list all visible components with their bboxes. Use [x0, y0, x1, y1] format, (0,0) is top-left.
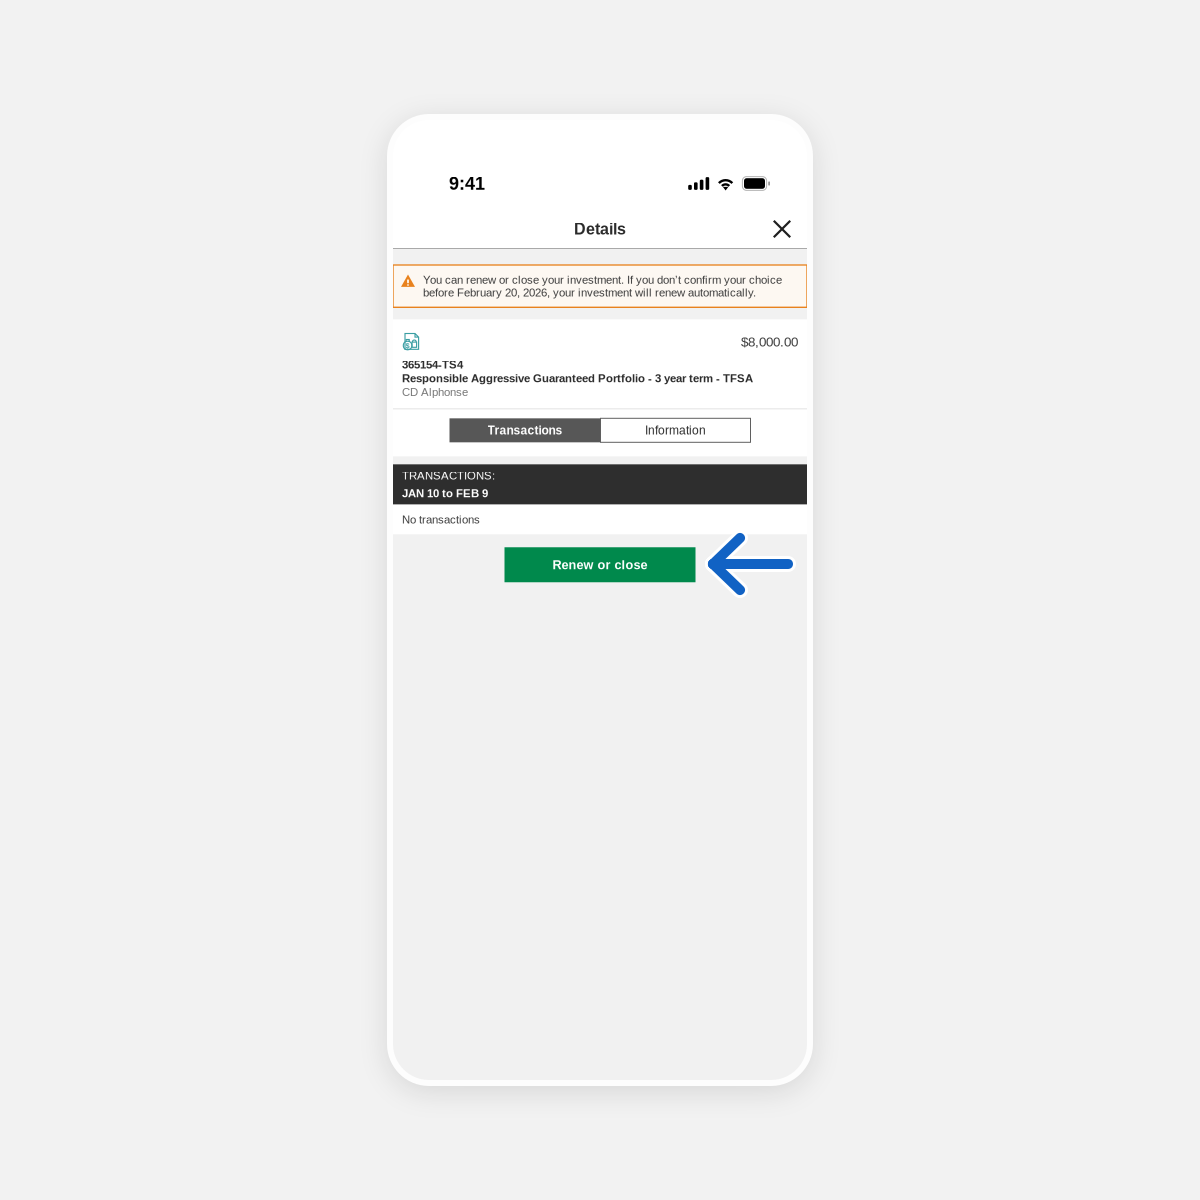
button[interactable]: Renew or close — [504, 547, 695, 582]
staticText: You can renew or close your investment. … — [423, 273, 782, 299]
button[interactable]: Close — [763, 210, 801, 248]
staticText: 9:41 — [449, 173, 485, 193]
staticText: Information — [645, 424, 706, 437]
staticText: Transactions — [487, 424, 562, 437]
staticText: No transactions — [402, 513, 480, 526]
staticText: $8,000.00 — [741, 334, 798, 349]
button[interactable]: Transactions — [449, 418, 600, 442]
staticText: 365154-TS4 — [402, 358, 463, 371]
button[interactable]: Information — [600, 418, 750, 442]
staticText: $ — [406, 341, 410, 350]
staticText: CD Alphonse — [402, 386, 468, 398]
staticText: Details — [574, 220, 626, 238]
staticText: Responsible Aggressive Guaranteed Portfo… — [402, 372, 753, 385]
staticText: Renew or close — [552, 558, 647, 572]
staticText: JAN 10 to FEB 9 — [402, 487, 488, 500]
staticText: TRANSACTIONS: — [402, 469, 495, 482]
